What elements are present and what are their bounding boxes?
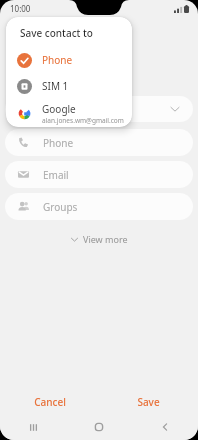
button[interactable]: Save [99, 391, 198, 413]
staticText: Save [137, 395, 160, 409]
button[interactable]: Email [5, 161, 193, 188]
staticText: View more [83, 233, 128, 245]
staticText: Phone [42, 53, 73, 67]
staticText: Cancel [34, 395, 66, 409]
staticText: Email [43, 168, 69, 182]
button[interactable]: SIM 1 [6, 73, 132, 99]
button[interactable]: Cancel [0, 391, 99, 413]
other: Expand account [169, 103, 181, 115]
button[interactable]: Back [132, 414, 198, 440]
staticText: Groups [43, 200, 78, 214]
staticText: Save contact to [20, 26, 93, 40]
button[interactable]: Home [66, 414, 132, 440]
button[interactable]: View more [0, 228, 198, 250]
button[interactable]: Expand account [5, 96, 193, 122]
button[interactable]: Phone [5, 129, 193, 156]
staticText: Phone [43, 136, 74, 150]
staticText: alan.jones.wm@gmail.com [42, 116, 124, 125]
button[interactable]: Groups [5, 193, 193, 220]
button[interactable]: Phone [6, 47, 132, 73]
staticText: SIM 1 [42, 79, 69, 93]
staticText: Google [42, 102, 76, 116]
button[interactable]: Recents [0, 414, 66, 440]
staticText: 10:00 [10, 3, 31, 14]
button[interactable]: Google [6, 99, 132, 127]
